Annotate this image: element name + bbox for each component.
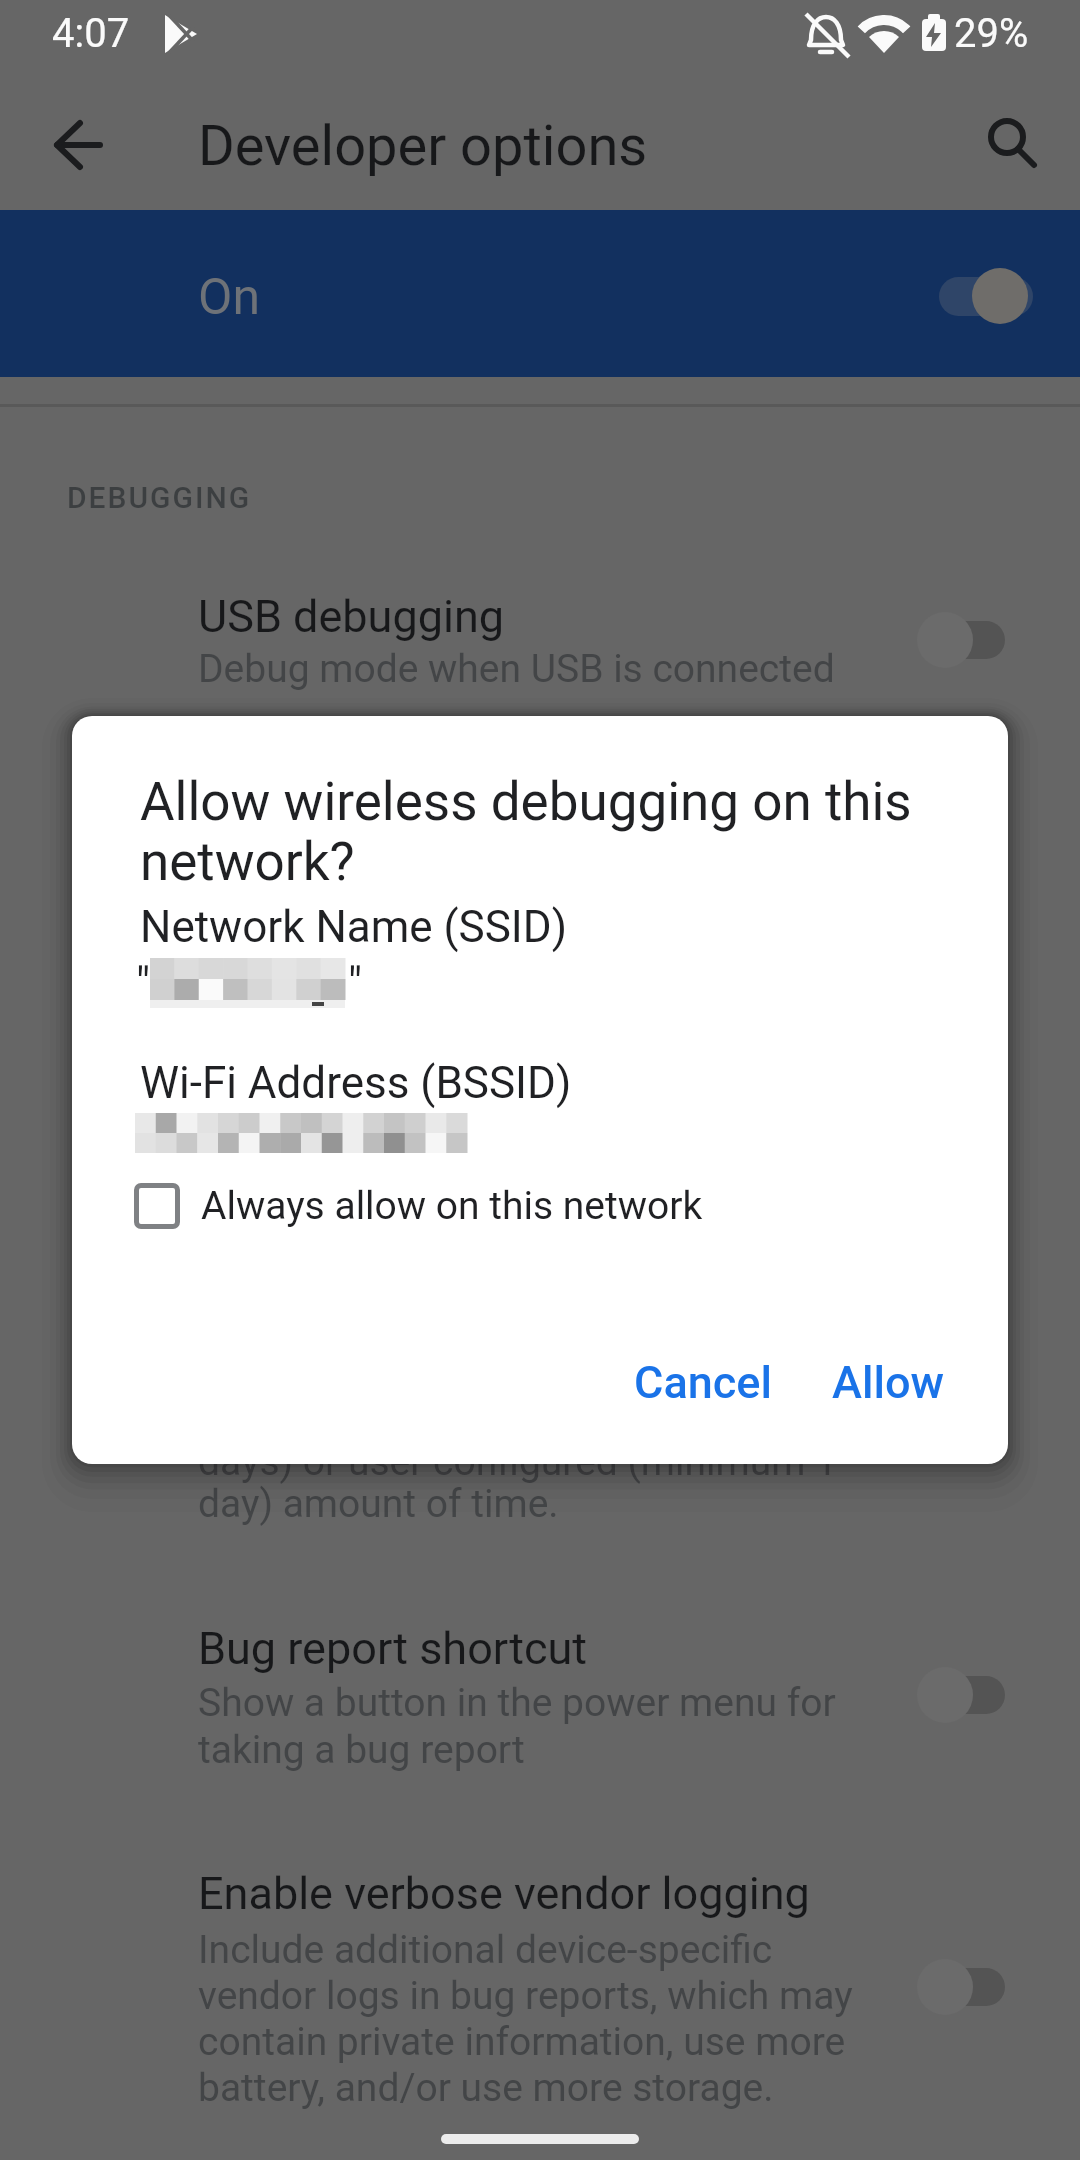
staticText: USB debugging <box>198 590 505 643</box>
staticText: 4:07 <box>52 10 130 57</box>
staticText: Show a button in the power menu for <box>198 1680 836 1726</box>
staticText: network? <box>140 831 355 893</box>
staticText: Cancel <box>634 1356 773 1409</box>
staticText: Include additional device-specific <box>198 1927 773 1973</box>
staticText: days) or user configured (minimum 1 <box>198 1439 838 1485</box>
button[interactable]: Cancel <box>553 1337 853 1427</box>
button[interactable] <box>975 105 1055 185</box>
button[interactable] <box>40 110 112 182</box>
button[interactable] <box>134 1183 180 1229</box>
button[interactable]: Allow <box>738 1337 1038 1427</box>
staticText: day) amount of time. <box>198 1481 559 1527</box>
staticText: taking a bug report <box>198 1727 525 1773</box>
staticText: Debug mode when USB is connected <box>198 646 835 692</box>
staticText: " <box>136 958 151 1010</box>
staticText: DEBUGGING <box>67 480 252 515</box>
staticText: " <box>348 958 363 1010</box>
button[interactable] <box>0 570 1080 710</box>
staticText: On <box>198 268 261 327</box>
staticText: 29% <box>954 10 1029 57</box>
staticText: Network Name (SSID) <box>140 901 568 953</box>
staticText: battery, and/or use more storage. <box>198 2065 774 2111</box>
staticText: vendor logs in bug reports, which may <box>198 1973 853 2019</box>
staticText: Wi-Fi Address (BSSID) <box>140 1057 572 1109</box>
staticText: Bug report shortcut <box>198 1622 587 1675</box>
staticText: Enable verbose vendor logging <box>198 1867 810 1920</box>
staticText: contain private information, use more <box>198 2019 846 2065</box>
button[interactable] <box>919 1676 1005 1714</box>
button[interactable] <box>939 277 1033 316</box>
button[interactable] <box>919 1968 1005 2006</box>
button[interactable] <box>0 1600 1080 1800</box>
staticText: Always allow on this network <box>201 1183 703 1229</box>
staticText: Allow wireless debugging on this <box>140 771 912 833</box>
button[interactable] <box>0 210 1080 377</box>
button[interactable] <box>919 621 1005 659</box>
staticText: Developer options <box>198 113 648 179</box>
button[interactable] <box>0 1850 1080 2130</box>
staticText: Allow <box>832 1356 945 1409</box>
